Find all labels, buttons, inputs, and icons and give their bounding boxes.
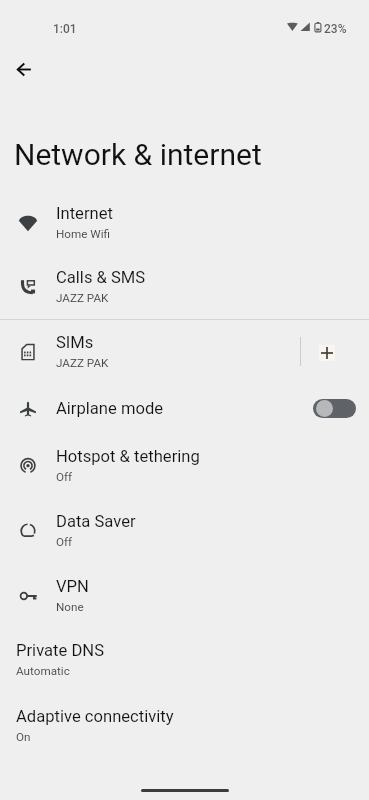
button[interactable]: Airplane mode <box>313 399 356 418</box>
staticText: Off <box>56 535 73 549</box>
staticText: Private DNS <box>16 641 104 660</box>
staticText: Hotspot & tethering <box>56 447 200 466</box>
button[interactable]: Airplane mode <box>0 384 369 433</box>
staticText: Home Wifi <box>56 227 111 241</box>
button[interactable]: VPN <box>0 563 369 628</box>
staticText: SIMs <box>56 333 94 352</box>
staticText: 23% <box>324 22 347 36</box>
staticText: JAZZ PAK <box>56 291 109 305</box>
staticText: Automatic <box>16 664 70 678</box>
button[interactable]: Internet <box>0 190 369 255</box>
staticText: Off <box>56 470 73 484</box>
button[interactable]: Back <box>4 49 44 89</box>
staticText: None <box>56 600 84 614</box>
staticText: On <box>16 730 31 744</box>
staticText: JAZZ PAK <box>56 356 109 370</box>
staticText: Airplane mode <box>56 399 164 418</box>
staticText: Adaptive connectivity <box>16 707 174 726</box>
staticText: 1:01 <box>53 22 77 36</box>
button[interactable]: Adaptive connectivity <box>0 693 369 758</box>
button[interactable]: Calls & SMS <box>0 254 369 319</box>
staticText: Data Saver <box>56 512 136 531</box>
button[interactable]: Hotspot & tethering <box>0 433 369 498</box>
staticText: Calls & SMS <box>56 268 146 287</box>
staticText: VPN <box>56 577 89 596</box>
button[interactable]: Add SIM <box>305 331 349 375</box>
button[interactable]: Private DNS <box>0 627 369 692</box>
staticText: Network & internet <box>14 137 262 172</box>
button[interactable]: SIMs <box>0 319 369 384</box>
button[interactable]: Data Saver <box>0 498 369 563</box>
staticText: Internet <box>56 204 113 223</box>
